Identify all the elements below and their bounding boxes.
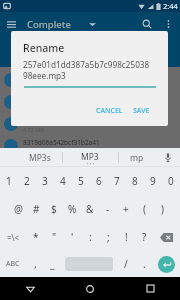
staticText: 7 bbox=[114, 174, 120, 188]
button[interactable]: , bbox=[26, 251, 45, 277]
staticText: 2 bbox=[24, 174, 30, 188]
button[interactable]: 5 bbox=[72, 167, 90, 195]
staticText: @ bbox=[14, 202, 23, 216]
staticText: CANCEL bbox=[96, 106, 123, 116]
button[interactable]: ABC bbox=[0, 251, 26, 277]
button[interactable]: % bbox=[63, 195, 81, 223]
button[interactable]: Home bbox=[60, 277, 120, 300]
staticText: ( bbox=[143, 202, 146, 216]
button[interactable]: 8 bbox=[126, 167, 144, 195]
staticText: " bbox=[52, 230, 57, 244]
button[interactable]: =\< bbox=[0, 223, 27, 251]
staticText: 4 bbox=[60, 174, 66, 188]
staticText: + bbox=[123, 202, 129, 216]
button[interactable]: ) bbox=[153, 195, 171, 223]
button[interactable]: ' bbox=[63, 223, 81, 251]
button[interactable]: ( bbox=[135, 195, 153, 223]
button[interactable]: - bbox=[99, 195, 117, 223]
staticText: & bbox=[86, 202, 94, 216]
staticText: Complete bbox=[27, 18, 71, 31]
staticText: ' bbox=[71, 230, 74, 244]
button[interactable]: / bbox=[117, 251, 135, 277]
button[interactable]: MP3s bbox=[0, 148, 62, 167]
staticText: * bbox=[33, 230, 39, 244]
button[interactable]: mp bbox=[118, 148, 156, 167]
staticText: , bbox=[34, 257, 37, 271]
button[interactable]: CANCEL bbox=[94, 103, 125, 119]
button[interactable]: & bbox=[81, 195, 99, 223]
button[interactable]: Search bbox=[136, 13, 158, 35]
button[interactable]: 6 bbox=[90, 167, 108, 195]
button[interactable]: 8319d06a542bcf31b2a41 bbox=[0, 69, 180, 91]
button[interactable]: Enter bbox=[158, 256, 175, 273]
button[interactable]: 8319d06a542bcf31b2a41 bbox=[0, 113, 180, 135]
staticText: $ bbox=[51, 202, 57, 216]
staticText: SAVE bbox=[133, 106, 150, 116]
button[interactable]: 3 bbox=[36, 167, 54, 195]
staticText: 9 bbox=[150, 174, 156, 188]
button[interactable]: 7 bbox=[108, 167, 126, 195]
button[interactable]: ? bbox=[135, 223, 153, 251]
button[interactable]: Back bbox=[0, 277, 60, 300]
button[interactable]: 2 bbox=[18, 167, 36, 195]
staticText: =\< bbox=[7, 232, 20, 243]
staticText: 3 bbox=[42, 174, 48, 188]
staticText: # bbox=[33, 202, 40, 216]
button[interactable]: 9 bbox=[144, 167, 162, 195]
staticText: - bbox=[106, 202, 110, 216]
staticText: mp bbox=[130, 152, 144, 164]
staticText: % bbox=[68, 202, 77, 216]
button[interactable]: : bbox=[81, 223, 99, 251]
button[interactable]: 4 bbox=[54, 167, 72, 195]
button[interactable]: Backspace bbox=[153, 223, 180, 251]
button[interactable]: MP3 bbox=[62, 148, 118, 167]
button[interactable]: 0 bbox=[162, 167, 180, 195]
staticText: 1 bbox=[6, 174, 12, 188]
button[interactable]: SAVE bbox=[131, 103, 152, 119]
staticText: 257e01d1dd387a5b7c998c25038 98eee.mp3 bbox=[23, 59, 150, 81]
staticText: 8 bbox=[132, 174, 138, 188]
staticText: ABC bbox=[6, 259, 20, 269]
staticText: 4.32 MB bbox=[23, 148, 44, 155]
staticText: ! bbox=[125, 230, 128, 244]
button[interactable]: # bbox=[27, 195, 45, 223]
staticText: ) bbox=[161, 202, 164, 216]
button[interactable]: " bbox=[45, 223, 63, 251]
staticText: / bbox=[124, 257, 128, 271]
staticText: 5 bbox=[78, 174, 84, 188]
button[interactable]: Complete bbox=[27, 18, 96, 31]
button[interactable]: 8319d06a542bcf31b2a41 bbox=[0, 91, 180, 113]
staticText: . bbox=[143, 257, 146, 271]
staticText: MP3 bbox=[81, 151, 99, 163]
button[interactable]: * bbox=[27, 223, 45, 251]
staticText: _ bbox=[50, 257, 55, 271]
button[interactable]: $ bbox=[45, 195, 63, 223]
staticText: 8319d06a542bcf31b2a41 bbox=[23, 72, 100, 81]
button[interactable]: Open navigation drawer bbox=[0, 13, 22, 35]
button[interactable]: @ bbox=[9, 195, 27, 223]
button[interactable]: + bbox=[117, 195, 135, 223]
staticText: MP3s bbox=[29, 152, 51, 164]
button[interactable]: . bbox=[135, 251, 153, 277]
staticText: 6 bbox=[96, 174, 102, 188]
button[interactable]: 8319d06a542bcf31b2a41 bbox=[0, 135, 180, 157]
button[interactable]: ; bbox=[99, 223, 117, 251]
staticText: 4.32 MB bbox=[23, 126, 44, 133]
button[interactable]: Add bbox=[150, 270, 174, 294]
staticText: 0 bbox=[168, 174, 174, 188]
button[interactable]: 1 bbox=[0, 167, 18, 195]
staticText: 8319d06a542bcf31b2a41 bbox=[23, 138, 100, 147]
button[interactable]: ! bbox=[117, 223, 135, 251]
button[interactable]: _ bbox=[45, 251, 60, 277]
staticText: ; bbox=[107, 230, 110, 244]
staticText: : bbox=[89, 230, 92, 244]
staticText: 2:44 bbox=[163, 1, 178, 11]
staticText: ? bbox=[142, 230, 147, 244]
button[interactable]: More options bbox=[159, 15, 177, 33]
button[interactable]: Recent apps bbox=[120, 277, 180, 300]
button[interactable]: Voice input bbox=[156, 148, 180, 167]
